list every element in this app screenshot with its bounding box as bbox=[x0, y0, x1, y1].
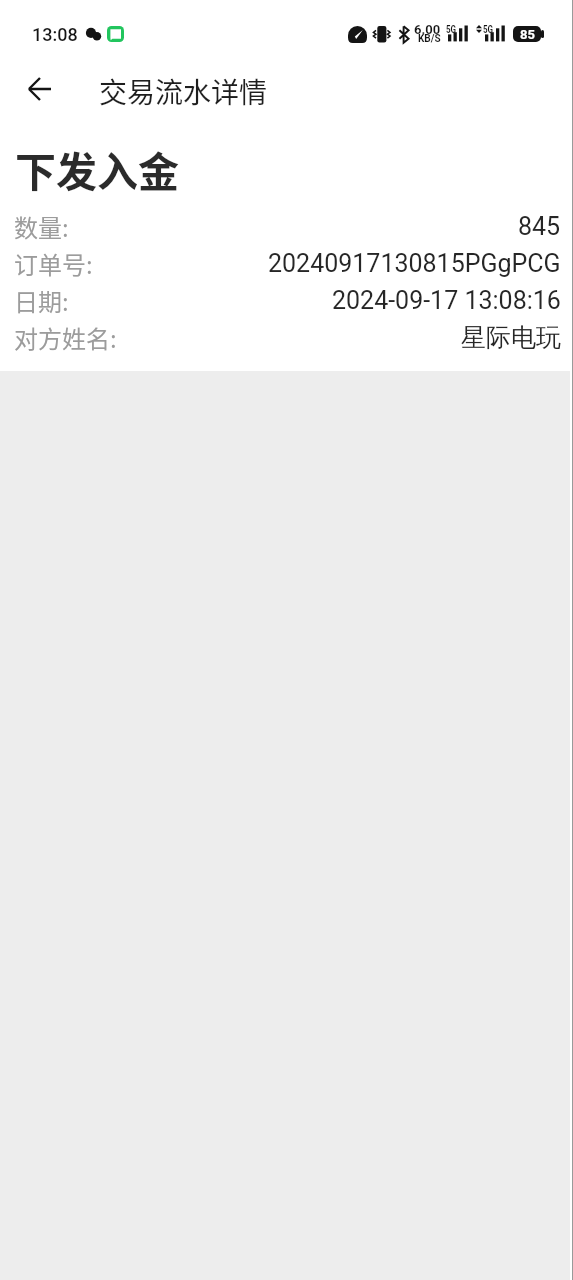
staticText: 星际电玩 bbox=[461, 322, 561, 353]
button[interactable]: 订单号: bbox=[0, 245, 573, 282]
staticText: 日期: bbox=[14, 283, 69, 318]
staticText: 6.00 bbox=[414, 22, 441, 37]
staticText: KB/S bbox=[418, 33, 441, 45]
staticText: 20240917130815PGgPCG bbox=[268, 249, 561, 278]
button[interactable]: 对方姓名: bbox=[0, 319, 573, 356]
staticText: 13:08 bbox=[32, 24, 78, 45]
staticText: 845 bbox=[518, 212, 561, 241]
staticText: 订单号: bbox=[14, 246, 93, 281]
staticText: 5G bbox=[483, 24, 493, 36]
staticText: 5G bbox=[446, 24, 456, 36]
staticText: 下发入金 bbox=[15, 139, 179, 198]
button[interactable]: 数量: bbox=[0, 208, 573, 245]
staticText: 2024-09-17 13:08:16 bbox=[332, 286, 561, 315]
staticText: 交易流水详情 bbox=[99, 71, 268, 112]
staticText: 85 bbox=[520, 27, 535, 42]
button[interactable]: 日期: bbox=[0, 282, 573, 319]
staticText: 对方姓名: bbox=[14, 320, 117, 355]
button[interactable]: Back bbox=[17, 67, 61, 111]
staticText: 数量: bbox=[14, 209, 69, 244]
